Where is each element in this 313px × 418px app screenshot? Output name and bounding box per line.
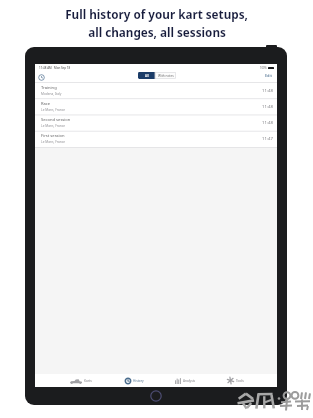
staticText: 11:48 (262, 119, 273, 125)
staticText: All (145, 74, 149, 78)
staticText: all changes, all sessions (88, 24, 226, 40)
button[interactable]: Edit (265, 73, 272, 78)
button[interactable]: Karts (70, 374, 92, 387)
staticText: 100% (260, 66, 267, 70)
staticText: With notes (158, 74, 174, 78)
button[interactable]: With notes (155, 72, 176, 79)
staticText: Karts (84, 379, 92, 383)
staticText: First session (41, 133, 65, 139)
staticText: Le Mans, France (41, 108, 66, 112)
button[interactable]: History (125, 374, 144, 387)
button[interactable]: Tools (227, 374, 244, 387)
staticText: Second session (41, 117, 71, 123)
staticText: Le Mans, France (41, 140, 66, 144)
button[interactable]: Race (35, 98, 277, 114)
staticText: Edit (265, 73, 272, 78)
staticText: Race (41, 101, 51, 107)
button[interactable]: Info (38, 74, 45, 81)
staticText: Modena, Italy (41, 92, 62, 96)
staticText: 11:48 AM (39, 66, 52, 70)
staticText: Le Mans, France (41, 124, 66, 128)
button[interactable]: Second session (35, 114, 277, 130)
staticText: Tools (236, 379, 244, 383)
staticText: Training (41, 85, 57, 91)
staticText: Mon Sep 18 (54, 66, 71, 70)
staticText: History (133, 379, 144, 383)
button[interactable]: First session (35, 130, 277, 146)
staticText: Analysis (183, 379, 196, 383)
button[interactable]: Analysis (175, 374, 196, 387)
staticText: 11:48 (262, 103, 273, 109)
button[interactable]: Training (35, 82, 277, 98)
staticText: 11:47 (262, 135, 273, 141)
staticText: Full history of your kart setups, (65, 6, 248, 22)
button[interactable]: All (138, 72, 155, 79)
staticText: 11:48 (262, 87, 273, 93)
